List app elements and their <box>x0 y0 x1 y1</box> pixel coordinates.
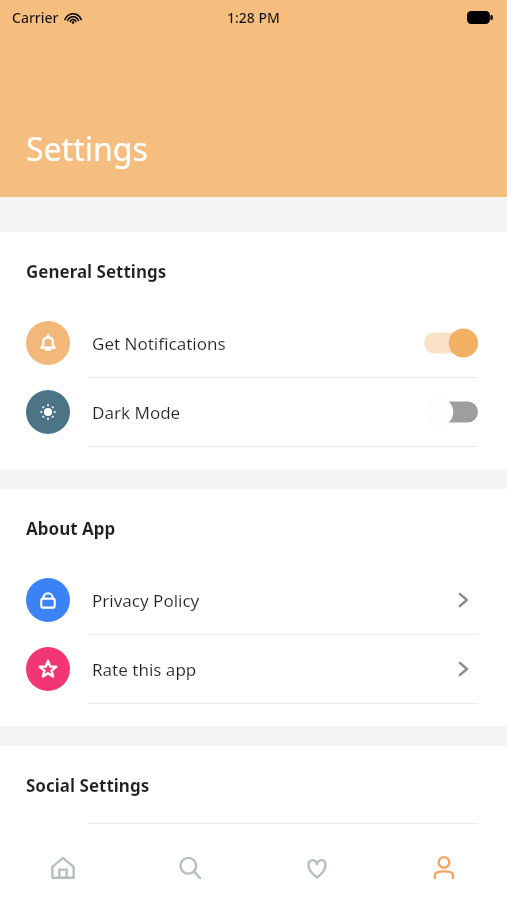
button[interactable]: Privacy policy <box>0 566 507 634</box>
button[interactable]: Search <box>126 835 253 900</box>
other: Our website <box>26 836 70 880</box>
button[interactable]: Open <box>448 843 478 873</box>
button[interactable]: Our website <box>0 824 507 892</box>
staticText: Social Settings <box>26 774 150 797</box>
other: Dark mode <box>26 390 70 434</box>
other: Privacy policy <box>26 578 70 622</box>
staticText: Carrier <box>12 8 59 27</box>
staticText: Privacy Policy <box>92 589 448 612</box>
staticText: Rate this app <box>92 658 448 681</box>
staticText: About App <box>26 517 116 540</box>
other: Notifications <box>26 321 70 365</box>
button[interactable]: Open <box>448 585 478 615</box>
staticText: 1:28 PM <box>227 8 280 27</box>
button[interactable]: Toggle on <box>424 326 478 360</box>
button[interactable]: Rate this app <box>0 635 507 703</box>
staticText: Our Website <box>92 847 448 870</box>
button[interactable]: Favorites <box>253 835 380 900</box>
button[interactable]: Toggle off <box>424 395 478 429</box>
button[interactable]: Notifications <box>0 309 507 377</box>
other: Rate this app <box>26 647 70 691</box>
staticText: Settings <box>26 127 148 171</box>
button[interactable]: Home <box>0 835 126 900</box>
button[interactable]: Open <box>448 654 478 684</box>
staticText: Dark Mode <box>92 401 424 424</box>
staticText: General Settings <box>26 260 167 283</box>
button[interactable]: Profile <box>380 835 507 900</box>
staticText: Get Notifications <box>92 332 424 355</box>
button[interactable]: Dark mode <box>0 378 507 446</box>
